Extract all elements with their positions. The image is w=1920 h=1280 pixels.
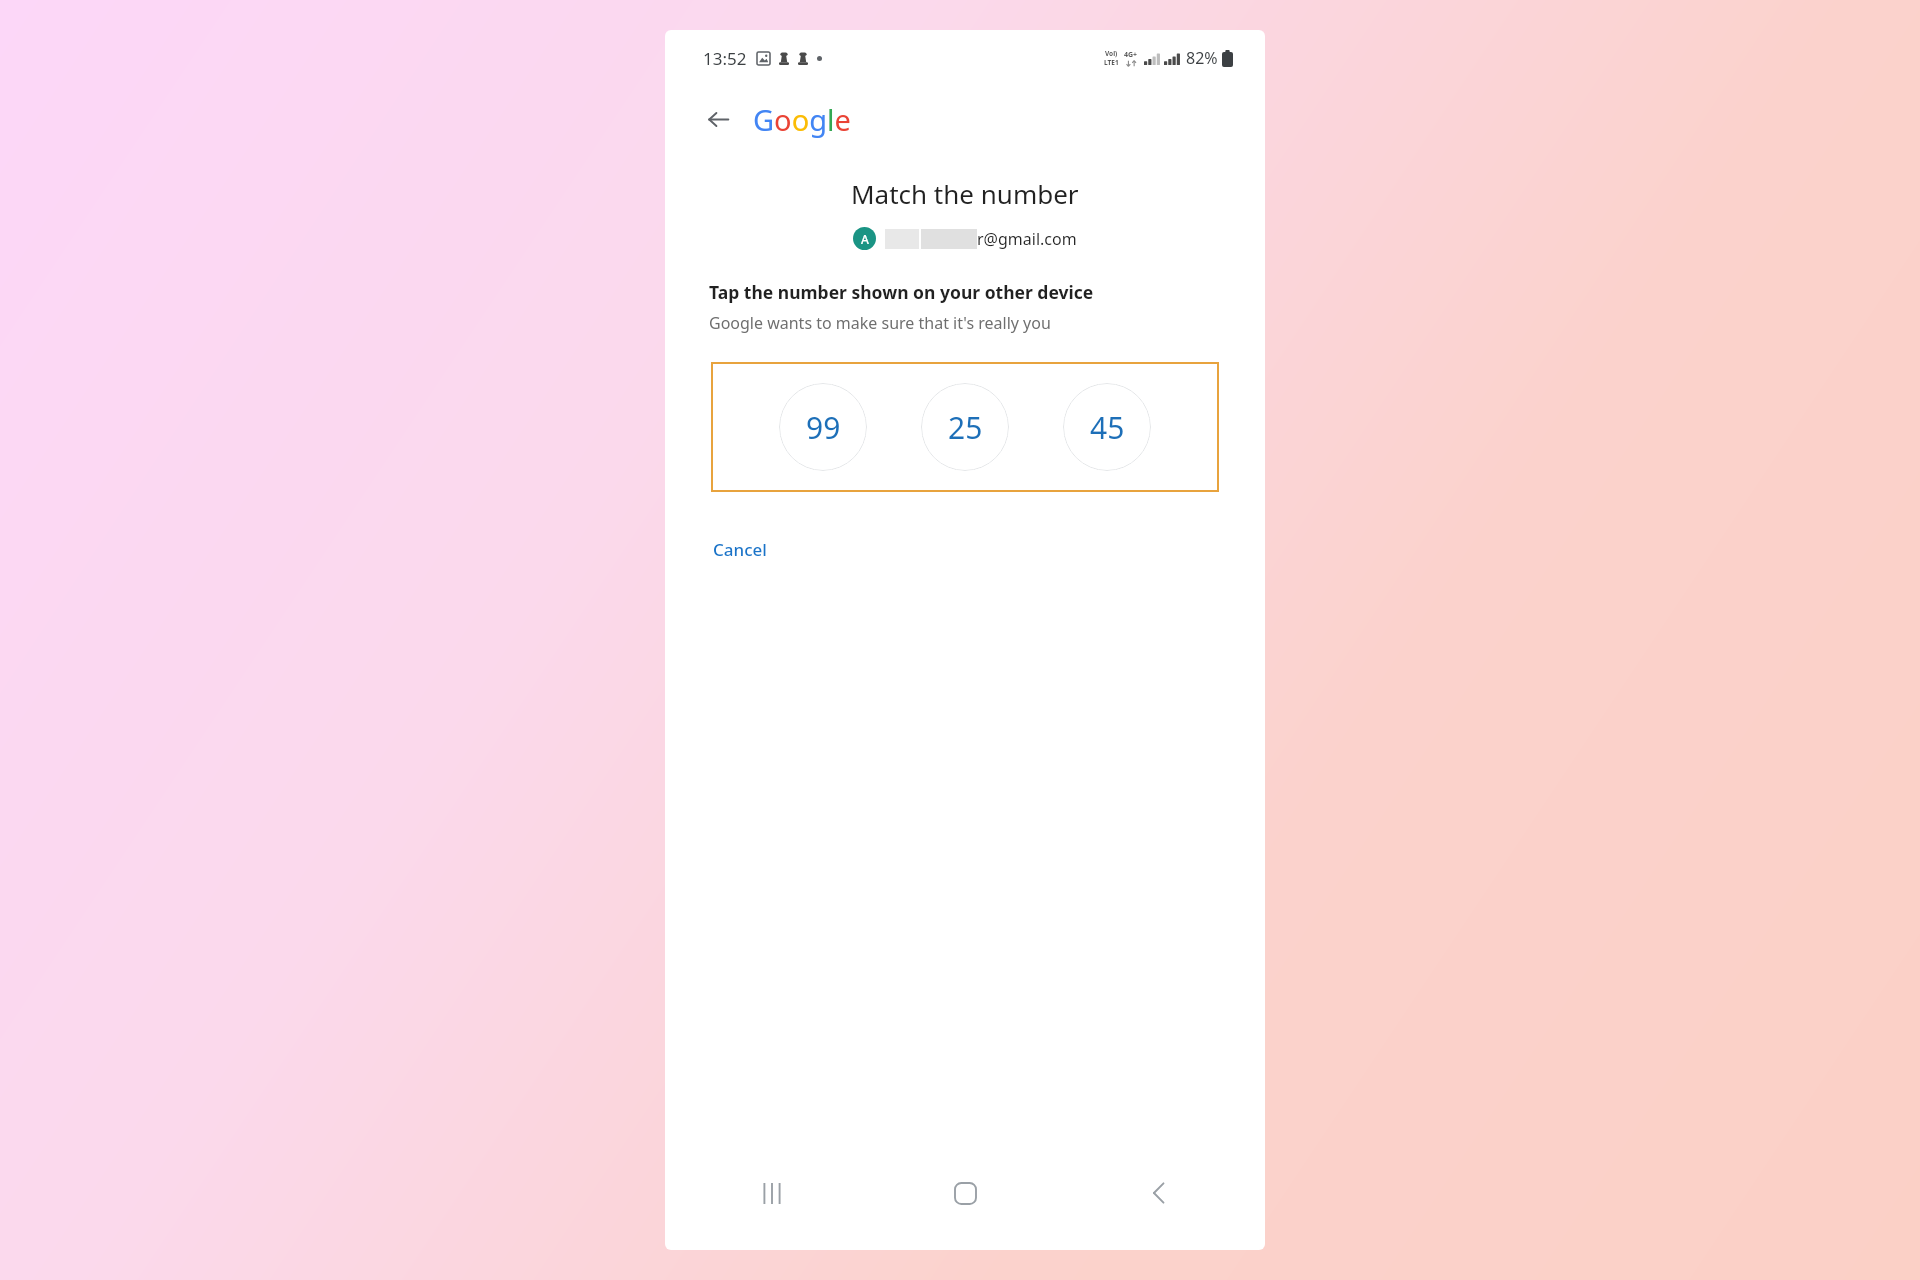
button[interactable]: Cancel bbox=[711, 534, 769, 565]
staticText: 45 bbox=[1090, 407, 1125, 448]
button[interactable]: Back bbox=[701, 102, 735, 136]
button[interactable]: A bbox=[853, 227, 1077, 250]
staticText: Tap the number shown on your other devic… bbox=[709, 280, 1094, 304]
staticText: Google bbox=[753, 100, 851, 139]
staticText: LTE1 bbox=[1104, 58, 1119, 67]
staticText: Match the number bbox=[851, 176, 1079, 211]
button[interactable]: 45 bbox=[1063, 383, 1151, 471]
staticText: A bbox=[861, 231, 869, 247]
staticText: Vol) bbox=[1105, 49, 1118, 58]
button[interactable]: Back bbox=[1062, 1164, 1255, 1222]
button[interactable]: Recent apps bbox=[675, 1164, 869, 1222]
staticText: 99 bbox=[806, 407, 841, 448]
staticText: r@gmail.com bbox=[977, 228, 1077, 250]
staticText: 4G+ bbox=[1124, 50, 1138, 60]
staticText: Google wants to make sure that it's real… bbox=[709, 312, 1051, 334]
staticText: 25 bbox=[948, 407, 983, 448]
button[interactable]: Home bbox=[869, 1164, 1062, 1222]
button[interactable]: 25 bbox=[921, 383, 1009, 471]
button[interactable]: 99 bbox=[779, 383, 867, 471]
staticText: Cancel bbox=[713, 538, 767, 561]
staticText: 13:52 bbox=[703, 47, 747, 70]
staticText: 82% bbox=[1186, 47, 1218, 69]
